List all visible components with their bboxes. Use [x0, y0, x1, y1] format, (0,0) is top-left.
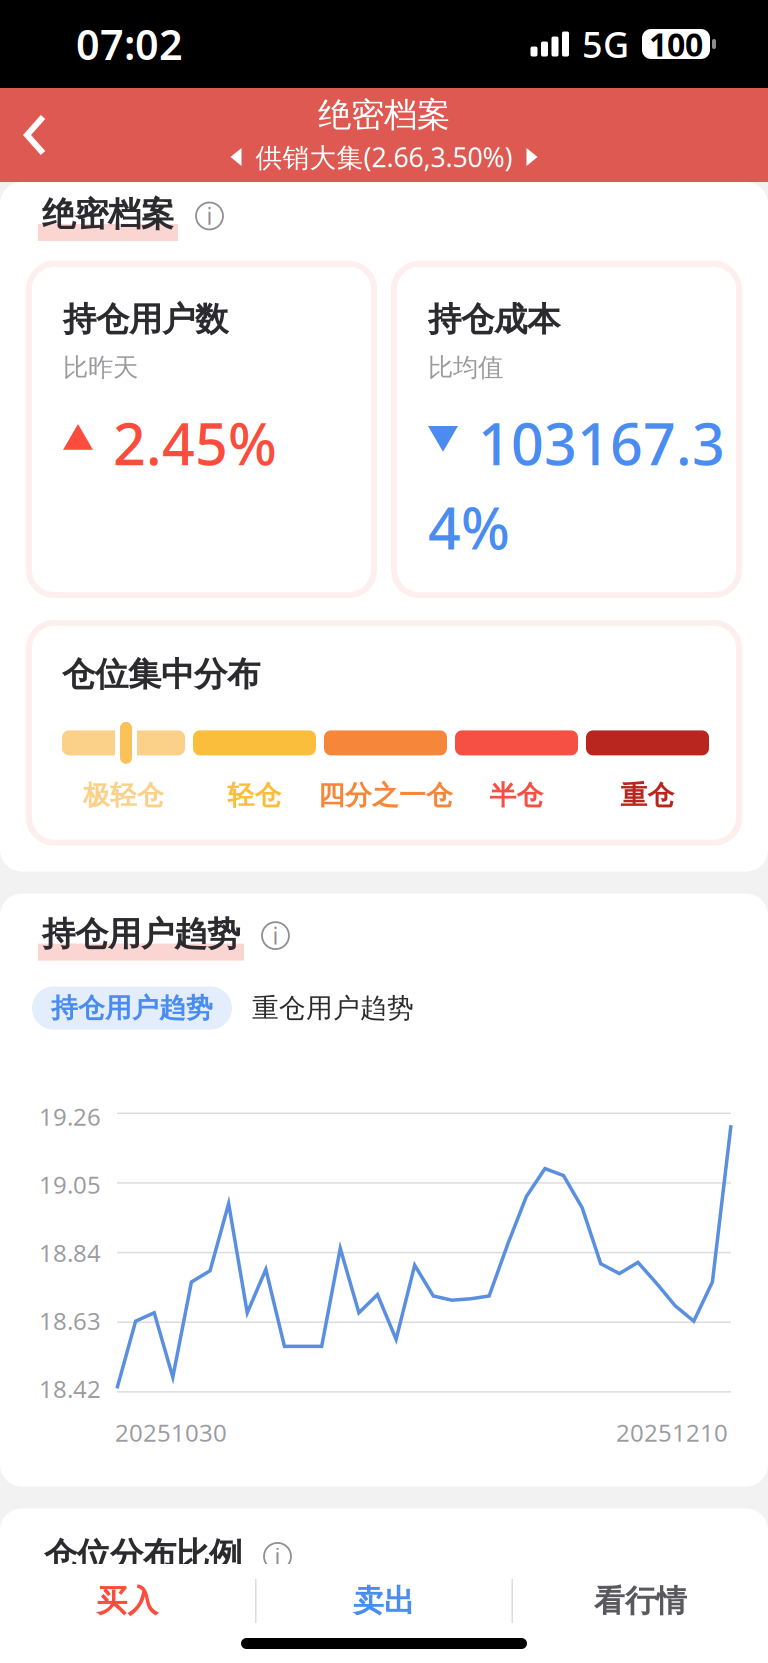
staticText: 18.84	[39, 1237, 101, 1268]
staticText: 19.26	[39, 1101, 101, 1132]
staticText: 18.42	[39, 1373, 101, 1405]
staticText: 持仓用户趋势	[42, 914, 240, 954]
staticText: 绝密档案	[318, 94, 450, 135]
staticText: i	[274, 1541, 280, 1571]
staticText: 20251030	[115, 1417, 227, 1448]
staticText: 5G	[582, 20, 629, 68]
staticText: 重仓用户趋势	[252, 992, 414, 1024]
staticText: 重仓	[620, 779, 674, 812]
staticText: 四分之一仓	[318, 779, 453, 812]
staticText: i	[272, 921, 278, 951]
staticText: 持仓用户数	[63, 299, 228, 340]
staticText: 持仓成本	[428, 299, 560, 340]
staticText: 2.45%	[113, 405, 277, 481]
button[interactable]: 买入	[0, 1564, 255, 1638]
button[interactable]: 重仓用户趋势	[252, 987, 414, 1030]
staticText: 轻仓	[227, 779, 281, 812]
staticText: 半仓	[489, 779, 543, 812]
staticText: 看行情	[594, 1582, 687, 1620]
staticText: 20251210	[616, 1417, 728, 1448]
staticText: 持仓用户趋势	[51, 992, 213, 1024]
staticText: 100	[649, 23, 703, 65]
button[interactable]: 卖出	[256, 1564, 511, 1638]
button[interactable]: Back	[0, 103, 70, 167]
staticText: 比均值	[428, 352, 503, 383]
staticText: 买入	[96, 1582, 158, 1620]
staticText: 极轻仓	[83, 779, 164, 812]
staticText: 19.05	[39, 1169, 101, 1200]
staticText: 4%	[428, 489, 510, 565]
staticText: i	[206, 201, 212, 231]
staticText: 仓位集中分布	[62, 654, 260, 695]
staticText: 18.63	[39, 1305, 101, 1337]
staticText: 供销大集(2.66,3.50%)	[255, 139, 512, 175]
staticText: 卖出	[353, 1582, 415, 1620]
staticText: 仓位分布比例	[44, 1534, 242, 1575]
staticText: 103167.3	[478, 405, 725, 481]
staticText: 绝密档案	[42, 194, 174, 235]
staticText: 07:02	[76, 17, 183, 71]
staticText: 比昨天	[63, 352, 138, 383]
button[interactable]: 持仓用户趋势	[32, 987, 232, 1030]
button[interactable]: 看行情	[513, 1564, 768, 1638]
